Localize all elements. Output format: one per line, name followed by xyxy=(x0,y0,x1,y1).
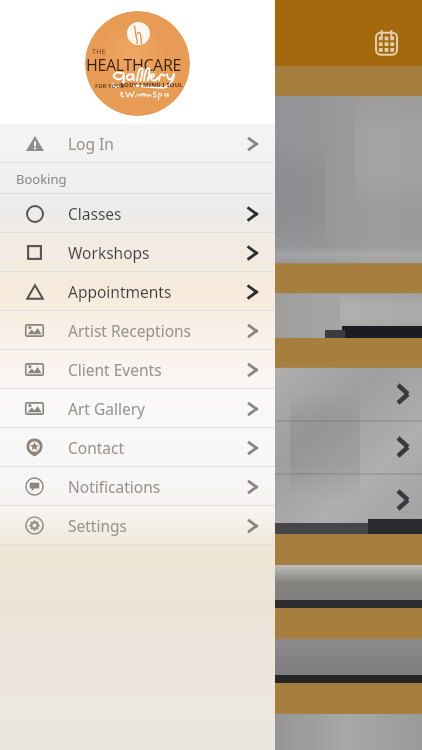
button[interactable]: Contact xyxy=(0,428,275,467)
staticText: Classes xyxy=(68,203,122,224)
button[interactable]: Settings xyxy=(0,506,275,545)
button[interactable]: Artist Receptions xyxy=(0,311,275,350)
staticText: Appointments xyxy=(68,281,172,302)
button[interactable]: Workshops xyxy=(0,233,275,272)
staticText: HEALTHCARE xyxy=(86,54,181,76)
staticText: Settings xyxy=(68,515,127,536)
staticText: Notifications xyxy=(68,476,161,497)
staticText: BODY I MIND I SOUL xyxy=(120,81,183,89)
button[interactable]: Log In xyxy=(0,124,275,163)
button[interactable]: Calendar xyxy=(366,21,406,61)
button[interactable]: Appointments xyxy=(0,272,275,311)
staticText: Workshops xyxy=(68,242,150,263)
button[interactable]: Notifications xyxy=(0,467,275,506)
staticText: Log In xyxy=(68,133,114,154)
staticText: Art Gallery xyxy=(68,398,145,419)
staticText: Contact xyxy=(68,437,125,458)
staticText: Client Events xyxy=(68,359,162,380)
staticText: THE xyxy=(92,47,106,57)
staticText: Artist Receptions xyxy=(68,320,192,341)
staticText: Booking xyxy=(16,170,67,188)
button[interactable]: Art Gallery xyxy=(0,389,275,428)
button[interactable]: Classes xyxy=(0,194,275,233)
button[interactable]: Client Events xyxy=(0,350,275,389)
staticText: FOR YOUR xyxy=(95,82,125,90)
